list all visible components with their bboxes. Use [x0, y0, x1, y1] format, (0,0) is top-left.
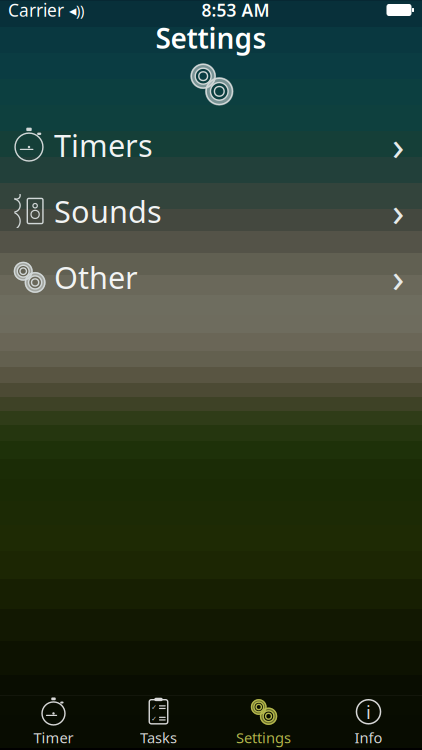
staticText: Settings: [155, 19, 266, 57]
button[interactable]: Sounds: [0, 178, 422, 244]
button[interactable]: i: [316, 696, 421, 748]
staticText: 8:53 AM: [201, 0, 269, 21]
staticText: i: [366, 699, 371, 724]
staticText: ◂)): [69, 0, 84, 20]
staticText: Sounds: [54, 191, 162, 231]
staticText: Carrier: [8, 0, 64, 21]
staticText: ›: [392, 184, 404, 237]
staticText: Other: [54, 257, 138, 297]
staticText: Timers: [54, 125, 153, 165]
button[interactable]: Timer: [1, 696, 106, 748]
staticText: Tasks: [140, 728, 177, 747]
staticText: ✓: [151, 703, 157, 711]
staticText: Info: [354, 728, 382, 747]
staticText: ✓: [151, 715, 157, 722]
button[interactable]: ✓: [106, 696, 211, 748]
staticText: ›: [392, 118, 404, 171]
button[interactable]: Settings: [211, 696, 316, 748]
staticText: Timer: [33, 728, 73, 747]
staticText: ›: [392, 250, 404, 303]
button[interactable]: Other: [0, 244, 422, 310]
staticText: Settings: [236, 728, 291, 747]
button[interactable]: Timers: [0, 112, 422, 178]
